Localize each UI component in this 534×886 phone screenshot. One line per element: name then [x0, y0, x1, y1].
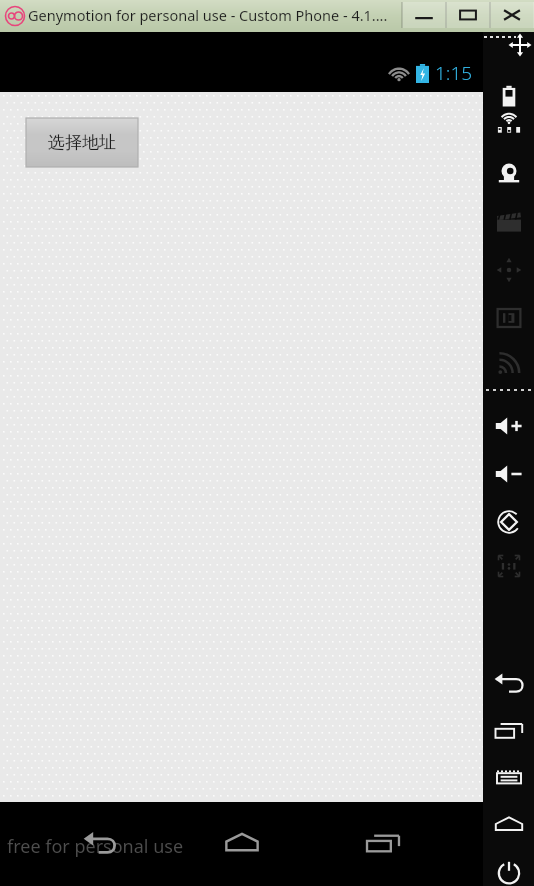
button[interactable]: Scale 1:1 — [483, 544, 534, 588]
button[interactable]: Identifiers — [483, 296, 534, 340]
button[interactable]: Close — [490, 2, 534, 28]
button[interactable]: GPS — [483, 102, 534, 146]
button[interactable]: Power — [483, 850, 534, 886]
button[interactable]: Volume up — [483, 404, 534, 448]
staticText: 1:15 — [435, 60, 473, 86]
button[interactable]: Back — [70, 813, 130, 873]
button[interactable]: Battery — [483, 74, 534, 118]
button[interactable]: Recent apps — [353, 813, 413, 873]
button[interactable]: Menu — [483, 756, 534, 800]
button[interactable]: D-pad — [483, 248, 534, 292]
button[interactable]: Video recording — [483, 200, 534, 244]
button[interactable]: Recent apps — [483, 708, 534, 752]
button[interactable]: 选择地址 — [26, 118, 138, 167]
button[interactable]: Home — [212, 813, 272, 873]
button[interactable]: Rotate — [483, 500, 534, 544]
button[interactable]: Camera — [483, 152, 534, 196]
staticText: Genymotion for personal use - Custom Pho… — [28, 5, 388, 25]
staticText: free for personal use — [7, 834, 184, 859]
button[interactable]: Back — [483, 660, 534, 704]
button[interactable]: Minimize — [402, 2, 446, 28]
button[interactable]: Home — [483, 802, 534, 846]
button[interactable]: Volume down — [483, 452, 534, 496]
button[interactable]: Maximize — [446, 2, 490, 28]
staticText: 选择地址 — [48, 132, 116, 153]
button[interactable]: Network — [483, 342, 534, 386]
